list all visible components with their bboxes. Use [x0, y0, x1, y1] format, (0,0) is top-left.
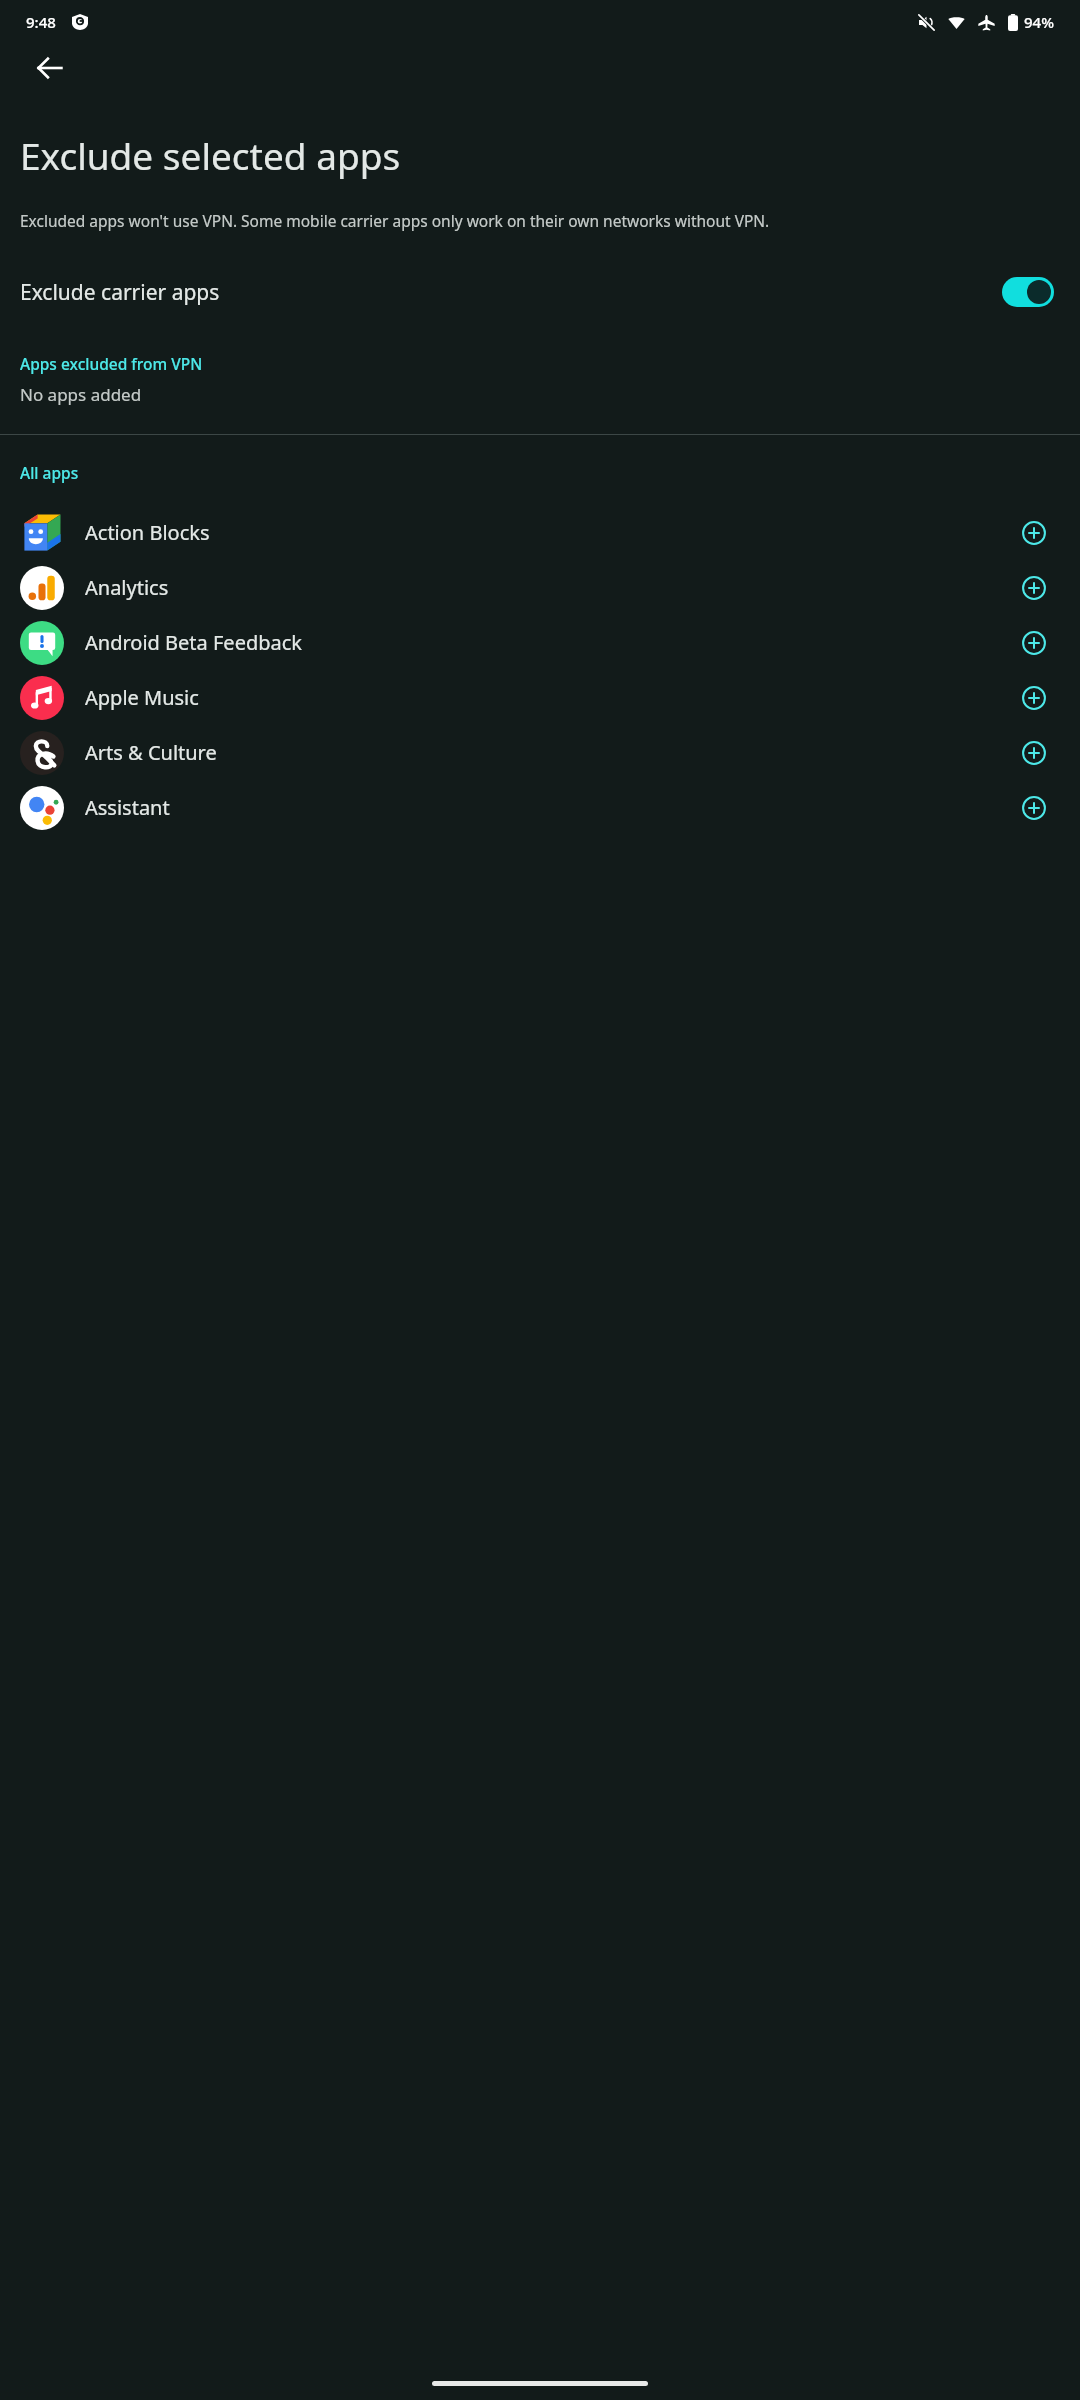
button[interactable]: Add Apple Music — [1014, 678, 1054, 718]
staticText: No apps added — [20, 383, 142, 406]
staticText: Exclude selected apps — [20, 130, 401, 180]
staticText: All apps — [20, 462, 79, 483]
button[interactable]: Add Android Beta Feedback — [1014, 623, 1054, 663]
button[interactable]: Add Action Blocks — [1014, 513, 1054, 553]
staticText: Analytics — [85, 574, 1014, 601]
button[interactable]: Add Analytics — [1014, 568, 1054, 608]
staticText: Arts & Culture — [85, 739, 1014, 766]
button[interactable]: Exclude carrier apps — [0, 259, 1080, 325]
staticText: 9:48 — [26, 12, 56, 32]
staticText: Action Blocks — [85, 519, 1014, 546]
staticText: Android Beta Feedback — [85, 629, 1014, 656]
staticText: Apps excluded from VPN — [20, 353, 203, 374]
staticText: 94% — [1024, 12, 1054, 32]
button[interactable]: Android Beta Feedback — [0, 615, 1080, 670]
button[interactable]: Apple Music — [0, 670, 1080, 725]
button[interactable]: Arts & Culture — [0, 725, 1080, 780]
staticText: Exclude carrier apps — [20, 278, 1002, 307]
staticText: Apple Music — [85, 684, 1014, 711]
button[interactable]: Action Blocks — [0, 505, 1080, 560]
button[interactable]: Add Arts & Culture — [1014, 733, 1054, 773]
staticText: Assistant — [85, 794, 1014, 821]
staticText: Excluded apps won't use VPN. Some mobile… — [20, 210, 770, 231]
button[interactable]: Back — [26, 44, 74, 92]
button[interactable]: Assistant — [0, 780, 1080, 835]
button[interactable]: Analytics — [0, 560, 1080, 615]
button[interactable]: Add Assistant — [1014, 788, 1054, 828]
